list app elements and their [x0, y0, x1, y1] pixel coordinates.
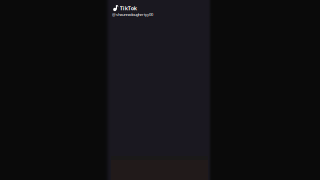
staticText: TikTok: [120, 5, 137, 12]
button[interactable]: @shaunnadoughertyy00: [112, 12, 153, 17]
staticText: @shaunnadoughertyy00: [112, 12, 153, 17]
button[interactable]: Pause video: [111, 0, 208, 180]
